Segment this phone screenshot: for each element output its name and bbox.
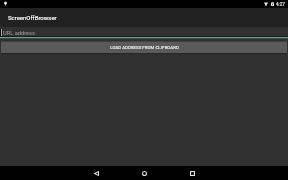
button[interactable]: Home (132, 166, 156, 180)
staticText: LOAD ADDRESS FROM CLIPBOARD (110, 45, 179, 50)
staticText: ScreenOffBrowser (8, 14, 57, 21)
staticText: 4:27 (276, 2, 285, 7)
button[interactable]: LOAD ADDRESS FROM CLIPBOARD (0, 40, 288, 53)
staticText: URL address (3, 30, 35, 37)
button[interactable]: Back (84, 166, 108, 180)
button[interactable]: Recent apps (180, 166, 204, 180)
